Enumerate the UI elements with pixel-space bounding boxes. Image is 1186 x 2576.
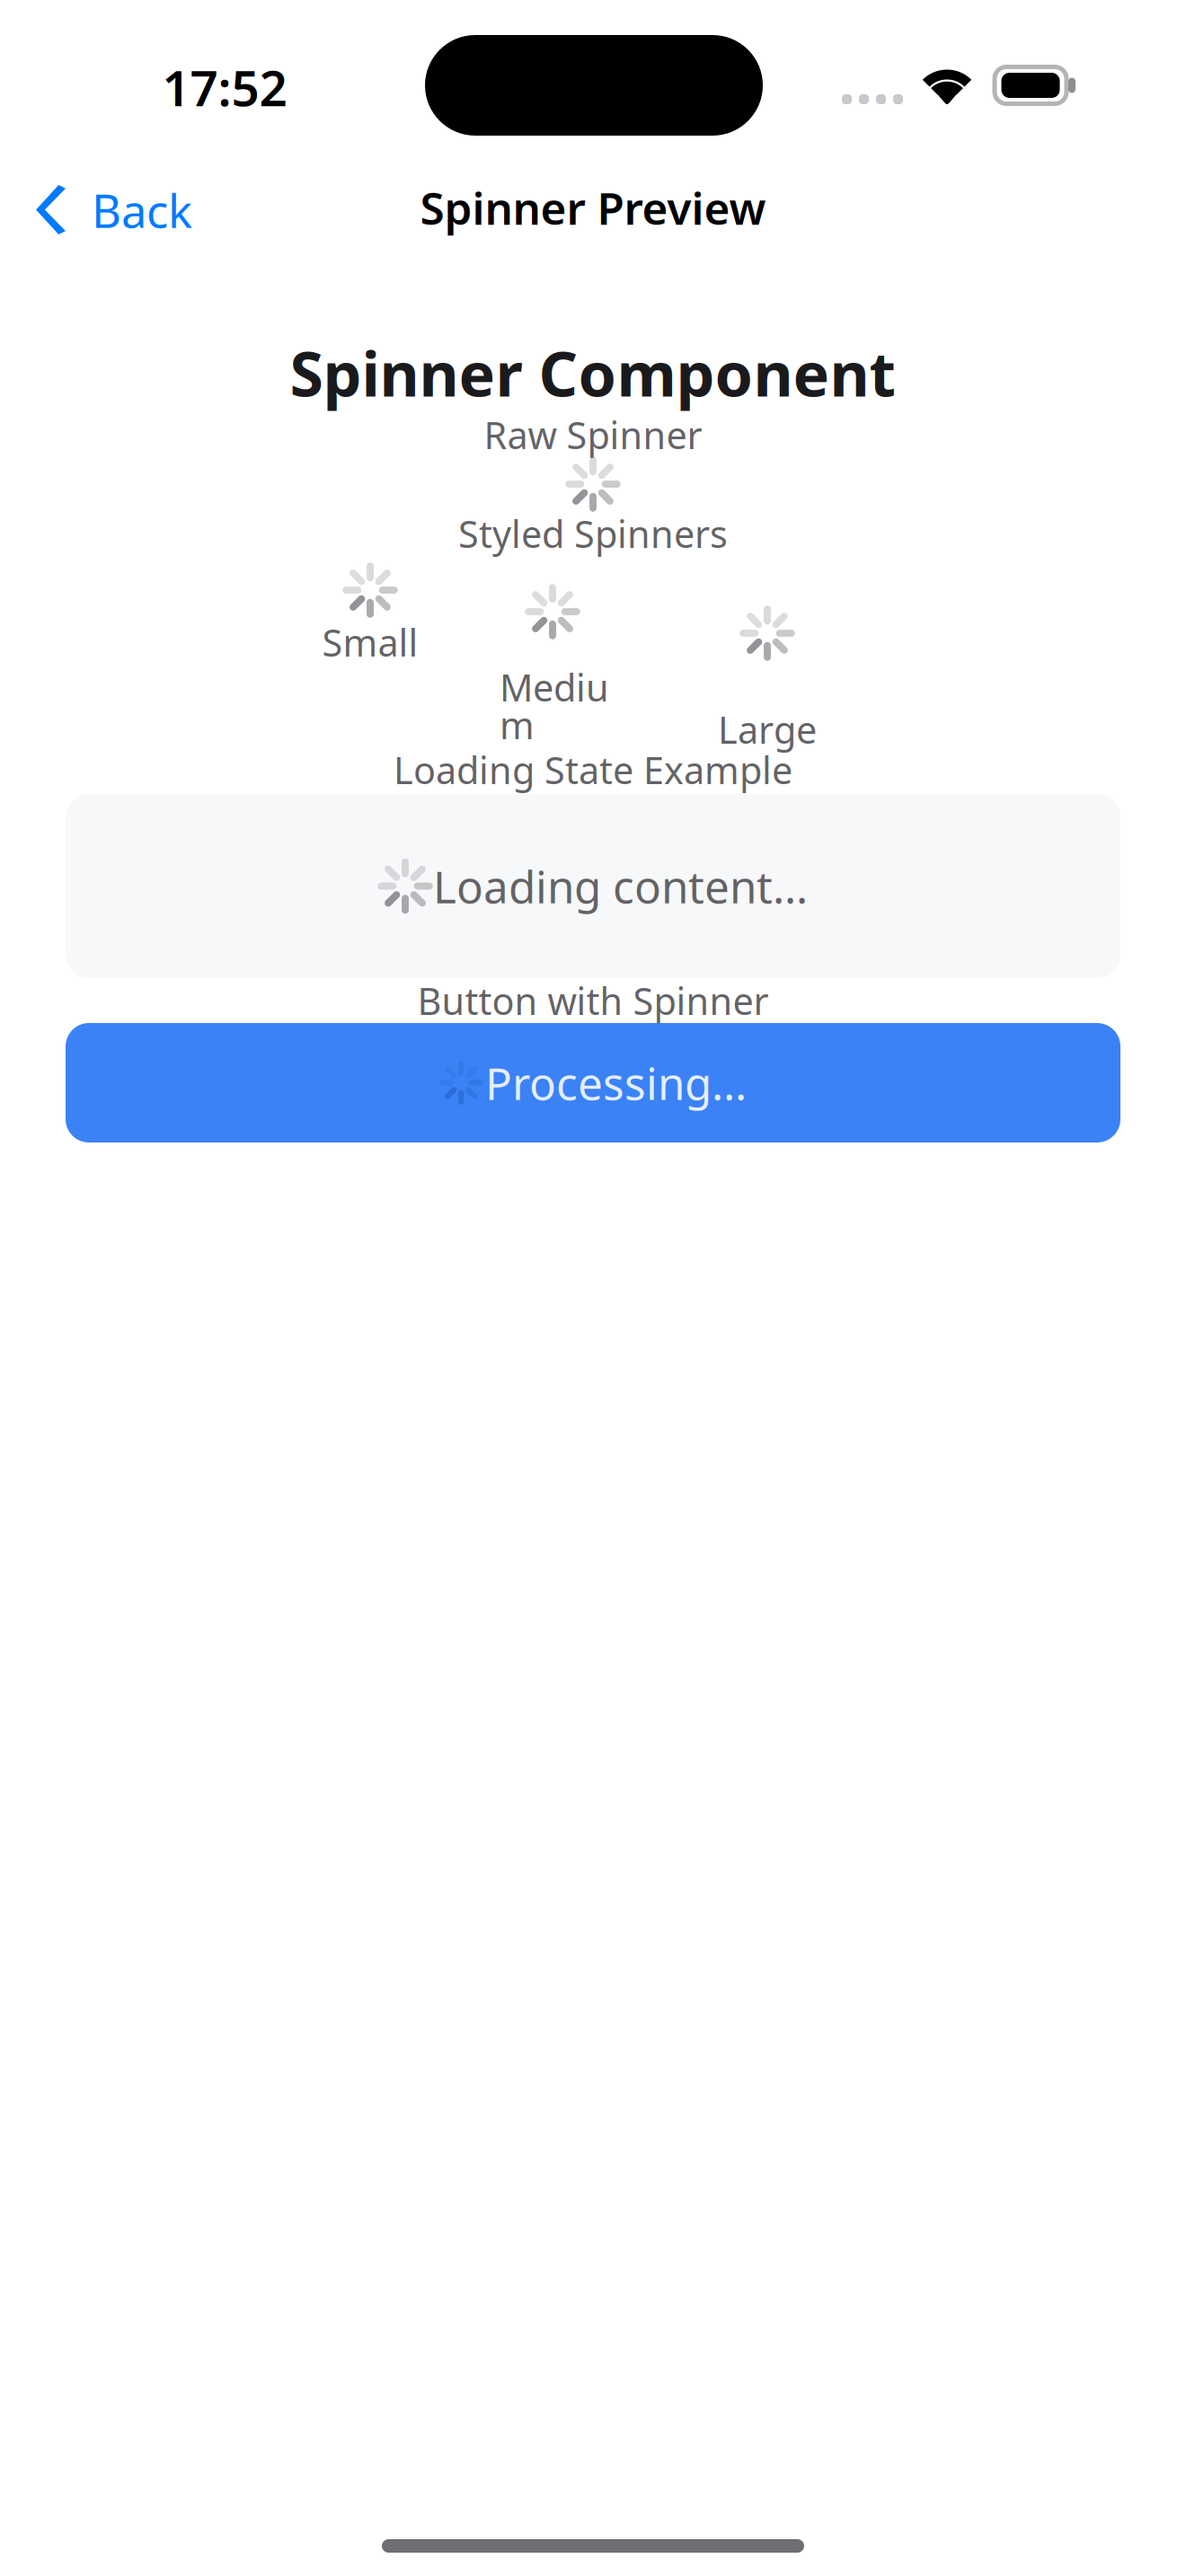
- staticText: Spinner Component: [290, 332, 896, 413]
- staticText: Processing...: [485, 1053, 747, 1112]
- staticText: m: [500, 700, 535, 750]
- staticText: Button with Spinner: [417, 976, 769, 1025]
- staticText: Large: [718, 705, 817, 754]
- staticText: Styled Spinners: [458, 509, 728, 558]
- staticText: Small: [322, 618, 418, 667]
- staticText: Spinner Preview: [420, 178, 766, 237]
- staticText: 17:52: [162, 55, 287, 120]
- button[interactable]: Back: [0, 144, 288, 277]
- staticText: Raw Spinner: [484, 410, 702, 459]
- button[interactable]: Processing...: [0, 1023, 1186, 1142]
- staticText: Loading State Example: [394, 745, 792, 794]
- staticText: Mediu: [500, 663, 609, 712]
- staticText: Back: [92, 180, 192, 240]
- staticText: Loading content...: [433, 857, 808, 915]
